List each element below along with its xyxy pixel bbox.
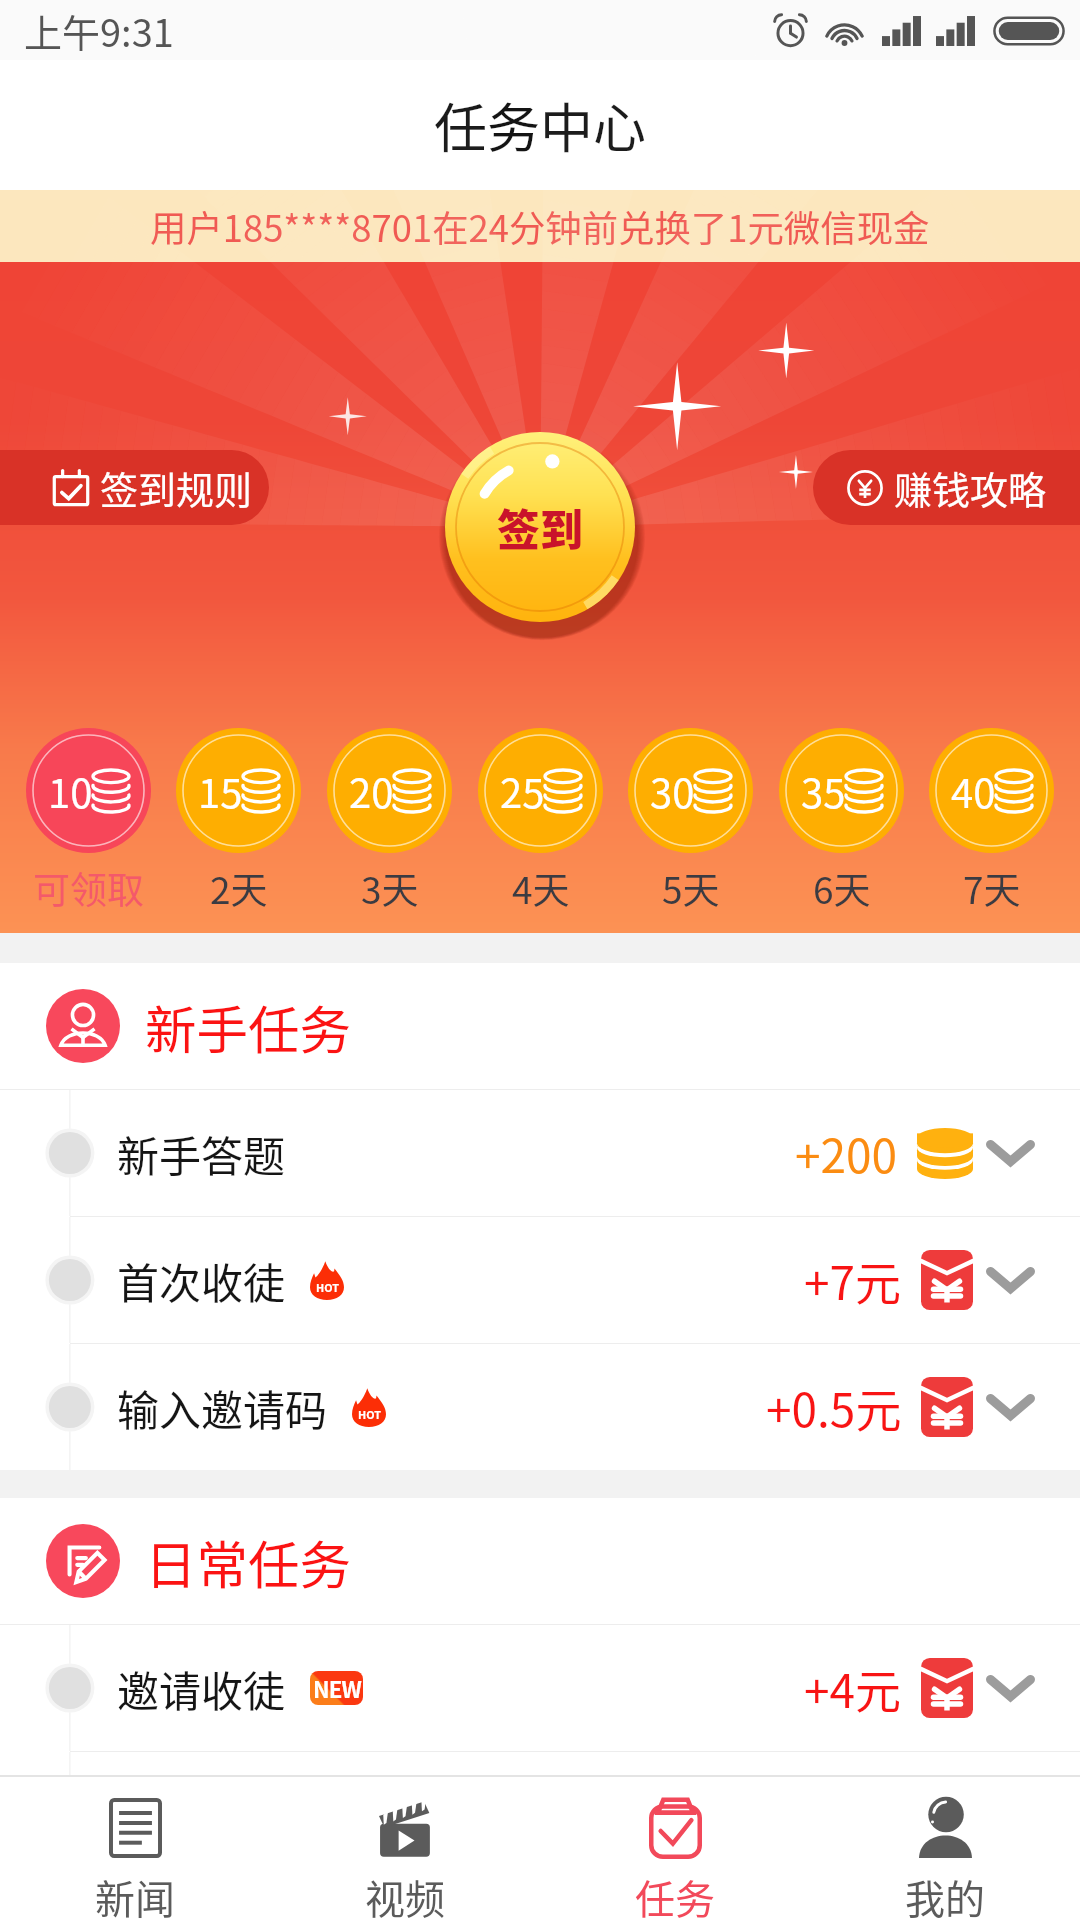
staticText: 上午9:31 [24, 3, 174, 58]
staticText: 4天 [512, 861, 570, 915]
button[interactable]: 25 [478, 728, 603, 915]
staticText: +0.5元 [766, 1374, 902, 1441]
staticText: 新手答题 [117, 1123, 286, 1184]
staticText: 15 [198, 762, 243, 820]
staticText: HOT [316, 1279, 339, 1295]
staticText: 新闻 [95, 1868, 175, 1920]
button[interactable]: 15 [176, 728, 301, 915]
staticText: 赚钱攻略 [894, 460, 1047, 515]
staticText: 可领取 [33, 861, 144, 915]
staticText: 2天 [210, 861, 268, 915]
button[interactable]: 签到规则 [0, 450, 269, 525]
staticText: +200 [795, 1120, 898, 1187]
staticText: 7天 [963, 861, 1021, 915]
staticText: 新手任务 [145, 989, 352, 1064]
button[interactable]: 视频 [270, 1777, 540, 1920]
staticText: 签到规则 [100, 460, 253, 515]
button[interactable]: 日常任务 [0, 1498, 1080, 1624]
staticText: 我的 [905, 1868, 985, 1920]
button[interactable]: 任务 [540, 1777, 810, 1920]
staticText: +7元 [804, 1247, 902, 1314]
button[interactable]: 首次收徒 [0, 1217, 1080, 1343]
staticText: HOT [358, 1406, 381, 1422]
staticText: 输入邀请码 [117, 1377, 328, 1438]
button[interactable]: 赚钱攻略 [813, 450, 1080, 525]
staticText: 用户185****8701在24分钟前兑换了1元微信现金 [150, 200, 930, 253]
button[interactable]: 新闻 [0, 1777, 270, 1920]
staticText: 签到 [497, 496, 583, 558]
button[interactable]: 邀请收徒 [0, 1625, 1080, 1751]
staticText: +4元 [804, 1655, 902, 1722]
button[interactable]: 输入邀请码 [0, 1344, 1080, 1470]
staticText: 视频 [365, 1868, 445, 1920]
staticText: 40 [951, 762, 996, 820]
button[interactable]: 20 [327, 728, 452, 915]
button[interactable]: 30 [628, 728, 753, 915]
staticText: 每日签到 [117, 1785, 286, 1846]
staticText: 任务中心 [434, 87, 646, 164]
staticText: 3天 [361, 861, 419, 915]
staticText: 6天 [813, 861, 871, 915]
staticText: 30 [650, 762, 695, 820]
button[interactable]: 新手答题 [0, 1090, 1080, 1216]
button[interactable]: 35 [779, 728, 904, 915]
staticText: 25 [500, 762, 545, 820]
staticText: NEW [313, 1672, 361, 1704]
staticText: 35 [801, 762, 846, 820]
button[interactable]: 40 [929, 728, 1054, 915]
staticText: 日常任务 [145, 1524, 352, 1599]
button[interactable]: 签到 [445, 432, 635, 622]
staticText: 邀请收徒 [117, 1658, 286, 1719]
button[interactable]: 10 [26, 728, 151, 915]
button[interactable]: 我的 [810, 1777, 1080, 1920]
staticText: 20 [349, 762, 394, 820]
staticText: 首次收徒 [117, 1250, 286, 1311]
staticText: 10 [48, 762, 93, 820]
button[interactable]: 新手任务 [0, 963, 1080, 1089]
staticText: 5天 [662, 861, 720, 915]
button[interactable]: 每日签到 [0, 1752, 1080, 1878]
staticText: 任务 [635, 1868, 715, 1920]
